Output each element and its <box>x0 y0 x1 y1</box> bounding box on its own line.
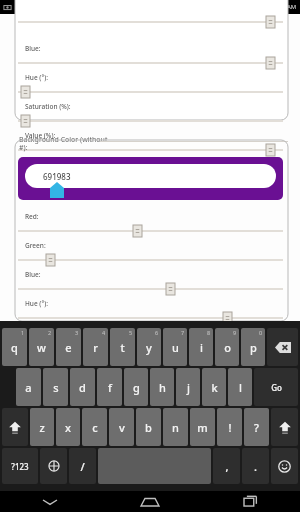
staticText: 3 <box>75 329 79 336</box>
button[interactable]: . <box>242 448 269 484</box>
staticText: AM <box>287 3 297 11</box>
staticText: r <box>93 340 98 355</box>
staticText: , <box>225 459 229 474</box>
button[interactable] <box>18 312 283 324</box>
staticText: Blue: <box>25 44 41 53</box>
staticText: w <box>37 340 46 355</box>
button[interactable]: 2 <box>29 328 54 366</box>
button[interactable]: x <box>56 408 80 446</box>
button[interactable] <box>18 115 283 127</box>
button[interactable]: 7 <box>163 328 187 366</box>
staticText: Blue: <box>25 270 41 279</box>
staticText: #): <box>19 143 28 153</box>
staticText: 5 <box>129 329 133 336</box>
button[interactable]: 9 <box>215 328 239 366</box>
button[interactable]: 691983 <box>18 157 283 200</box>
staticText: 691983 <box>43 171 71 182</box>
staticText: g <box>133 380 140 395</box>
button[interactable]: ?123 <box>2 448 38 484</box>
staticText: 8 <box>207 329 211 336</box>
button[interactable]: m <box>190 408 215 446</box>
staticText: b <box>145 420 152 435</box>
staticText: i <box>200 340 203 355</box>
button[interactable]: k <box>202 368 226 406</box>
staticText: s <box>53 380 59 395</box>
button[interactable]: d <box>70 368 95 406</box>
button[interactable]: ? <box>244 408 269 446</box>
button[interactable] <box>18 341 283 353</box>
other: Text cursor handle <box>50 182 64 198</box>
button[interactable] <box>18 86 283 98</box>
button[interactable]: / <box>69 448 96 484</box>
staticText: l <box>239 380 242 395</box>
staticText: n <box>172 420 179 435</box>
button[interactable]: z <box>30 408 54 446</box>
button[interactable]: n <box>163 408 188 446</box>
button[interactable]: 1 <box>2 328 27 366</box>
staticText: ?123 <box>11 461 29 472</box>
button[interactable]: f <box>97 368 122 406</box>
button[interactable] <box>18 225 283 237</box>
button[interactable]: 4 <box>83 328 108 366</box>
staticText: 2 <box>48 329 52 336</box>
button[interactable]: , <box>213 448 240 484</box>
button[interactable]: Recent apps <box>200 491 300 512</box>
button[interactable]: j <box>176 368 200 406</box>
button[interactable] <box>18 254 283 266</box>
button[interactable]: a <box>16 368 41 406</box>
staticText: c <box>92 420 98 435</box>
button[interactable]: 5 <box>110 328 135 366</box>
button[interactable]: c <box>82 408 107 446</box>
staticText: / <box>80 459 85 474</box>
staticText: u <box>172 340 179 355</box>
staticText: Hue (°): <box>25 299 48 308</box>
staticText: m <box>197 420 208 435</box>
button[interactable]: Backspace <box>267 328 298 366</box>
staticText: . <box>254 459 257 474</box>
staticText: x <box>65 420 71 435</box>
button[interactable]: v <box>109 408 134 446</box>
staticText: y <box>146 340 152 355</box>
staticText: Red: <box>25 212 39 221</box>
button[interactable] <box>18 16 283 28</box>
button[interactable]: 0 <box>241 328 265 366</box>
staticText: Green: <box>25 241 46 250</box>
button[interactable]: 6 <box>137 328 161 366</box>
staticText: 0 <box>259 329 263 336</box>
staticText: a <box>25 380 32 395</box>
button[interactable]: l <box>228 368 252 406</box>
button[interactable] <box>18 144 283 156</box>
button[interactable]: Change language <box>40 448 67 484</box>
button[interactable]: s <box>43 368 68 406</box>
button[interactable]: b <box>136 408 161 446</box>
staticText: Background Color (without <box>19 135 108 145</box>
button[interactable]: Emoji <box>271 448 298 484</box>
button[interactable]: g <box>124 368 148 406</box>
staticText: t <box>120 340 125 355</box>
staticText: 7 <box>181 329 185 336</box>
staticText: Value (%): <box>25 131 56 140</box>
staticText: d <box>79 380 86 395</box>
button[interactable]: 3 <box>56 328 81 366</box>
button[interactable]: Shift <box>271 408 298 446</box>
staticText: 9 <box>233 329 237 336</box>
staticText: v <box>119 420 125 435</box>
staticText: q <box>11 340 18 355</box>
button[interactable]: ! <box>217 408 242 446</box>
staticText: o <box>224 340 231 355</box>
button[interactable] <box>18 283 283 295</box>
staticText: Go <box>271 382 282 393</box>
staticText: k <box>211 380 218 395</box>
button[interactable]: h <box>150 368 174 406</box>
button[interactable]: Hide keyboard <box>0 491 100 512</box>
staticText: ! <box>228 420 232 435</box>
button[interactable]: Go <box>254 368 298 406</box>
button[interactable]: 8 <box>189 328 213 366</box>
staticText: p <box>250 340 257 355</box>
button[interactable] <box>18 57 283 69</box>
button[interactable]: Shift <box>2 408 28 446</box>
button[interactable]: Home <box>100 491 200 512</box>
